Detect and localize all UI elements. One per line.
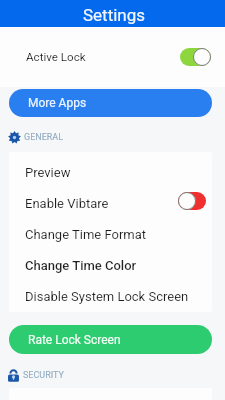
button[interactable]: Disable System Lock Screen — [9, 281, 212, 312]
staticText: Active Lock — [26, 50, 86, 64]
button[interactable]: Change Time Color — [9, 250, 212, 281]
staticText: Rate Lock Screen — [28, 333, 121, 347]
staticText: SECURITY — [23, 370, 64, 381]
staticText: Disable System Lock Screen — [25, 289, 189, 304]
other: Toggle off — [178, 192, 206, 210]
staticText: Enable Vibtare — [25, 196, 109, 211]
button[interactable]: More Apps — [9, 89, 212, 117]
staticText: Change Time Format — [25, 227, 147, 242]
button[interactable]: Rate Lock Screen — [9, 325, 212, 354]
button[interactable]: Preview — [9, 157, 212, 188]
staticText: GENERAL — [24, 132, 64, 143]
staticText: Preview — [25, 165, 71, 180]
staticText: More Apps — [28, 96, 87, 110]
staticText: Change Time Color — [25, 258, 137, 273]
button[interactable]: Enable Vibtare — [9, 188, 212, 219]
staticText: Settings — [83, 5, 146, 25]
button[interactable]: Change Time Format — [9, 219, 212, 250]
other: Toggle on — [180, 48, 211, 66]
button[interactable]: Active Lock — [0, 27, 225, 87]
